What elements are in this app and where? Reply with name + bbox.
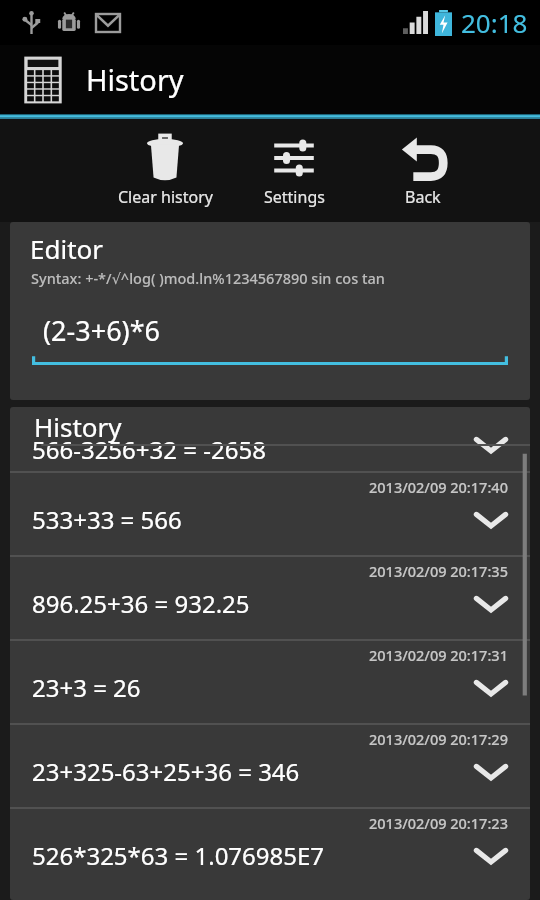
- staticText: Clear history: [118, 186, 213, 208]
- button[interactable]: 2013/02/09 20:17:31: [10, 641, 530, 723]
- button[interactable]: Back: [359, 119, 487, 222]
- other: Expand entry: [474, 594, 508, 614]
- button[interactable]: Clear history: [101, 119, 229, 222]
- staticText: 2013/02/09 20:17:40: [369, 477, 508, 497]
- button[interactable]: 2013/02/09 20:17:35: [10, 557, 530, 639]
- staticText: 2013/02/09 20:17:35: [369, 561, 508, 581]
- staticText: 526*325*63 = 1.076985E7: [32, 839, 325, 872]
- staticText: Settings: [264, 186, 325, 208]
- staticText: (2-3+6)*6: [43, 312, 160, 349]
- staticText: 2013/02/09 20:17:23: [369, 813, 508, 833]
- button[interactable]: Settings: [229, 119, 359, 222]
- other: Expand entry: [474, 846, 508, 866]
- button[interactable]: 2013/02/09 20:17:29: [10, 725, 530, 807]
- button[interactable]: (2-3+6)*6: [32, 312, 508, 366]
- staticText: Back: [405, 186, 441, 208]
- staticText: History: [86, 60, 184, 99]
- button[interactable]: 2013/02/09 20:17:40: [10, 473, 530, 555]
- button[interactable]: 2013/02/09 20:17:23: [10, 809, 530, 891]
- staticText: Syntax: +-*/√^log( )mod.ln%1234567890 si…: [31, 268, 385, 288]
- staticText: 566-3256+32 = -2658: [32, 433, 266, 466]
- staticText: 896.25+36 = 932.25: [32, 587, 250, 620]
- staticText: History: [34, 409, 122, 444]
- other: Expand entry: [474, 762, 508, 782]
- staticText: 20:18: [461, 5, 528, 40]
- other: Expand entry: [474, 510, 508, 530]
- other: Expand entry: [474, 678, 508, 698]
- staticText: 23+3 = 26: [32, 671, 141, 704]
- staticText: 2013/02/09 20:17:31: [369, 645, 508, 665]
- staticText: 2013/02/09 20:17:29: [369, 729, 508, 749]
- staticText: 23+325-63+25+36 = 346: [32, 755, 300, 788]
- staticText: 533+33 = 566: [32, 503, 182, 536]
- staticText: Editor: [30, 231, 104, 266]
